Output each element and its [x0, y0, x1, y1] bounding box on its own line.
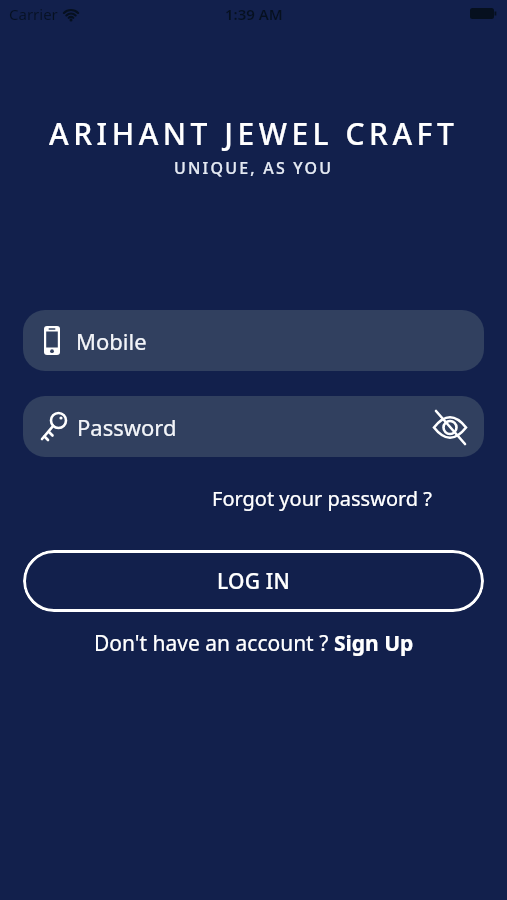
- button[interactable]: [424, 401, 476, 453]
- staticText: ARIHANT JEWEL CRAFT: [49, 113, 459, 154]
- button[interactable]: LOG IN: [23, 550, 484, 612]
- staticText: Password: [77, 412, 177, 442]
- staticText: Sign Up: [334, 629, 414, 658]
- staticText: Carrier: [9, 4, 58, 24]
- button[interactable]: Mobile: [23, 310, 484, 371]
- button[interactable]: Password: [23, 396, 484, 457]
- staticText: 1:39 AM: [225, 4, 283, 24]
- staticText: Don't have an account ?: [94, 629, 334, 658]
- staticText: LOG IN: [217, 567, 290, 596]
- staticText: Mobile: [76, 326, 147, 356]
- staticText: UNIQUE, AS YOU: [174, 157, 334, 179]
- button[interactable]: Forgot your password ?: [212, 485, 433, 512]
- button[interactable]: Don't have an account ?: [94, 629, 414, 658]
